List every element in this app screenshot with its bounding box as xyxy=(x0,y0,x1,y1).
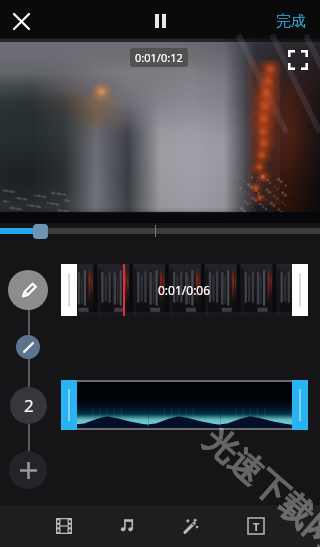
button[interactable]: Clip 2 xyxy=(10,387,47,424)
button[interactable]: Effects xyxy=(170,505,212,547)
button[interactable]: 完成 xyxy=(262,0,320,42)
button[interactable]: Close xyxy=(0,0,42,42)
staticText: 0:01/0:12 xyxy=(135,50,183,65)
staticText: 光速下载网 xyxy=(196,419,320,547)
staticText: T xyxy=(253,519,260,534)
button[interactable]: Video xyxy=(43,505,85,547)
staticText: 0:01/0:06 xyxy=(158,282,211,298)
button[interactable]: Edit clip xyxy=(8,270,48,310)
button[interactable]: Pause xyxy=(139,0,181,42)
button[interactable]: Fullscreen xyxy=(288,50,308,70)
button[interactable]: Seek handle xyxy=(33,224,48,239)
button[interactable]: Transition xyxy=(16,335,40,359)
staticText: 完成 xyxy=(276,12,306,31)
button[interactable]: Music xyxy=(106,505,148,547)
staticText: 2 xyxy=(24,394,34,417)
button[interactable]: Add clip xyxy=(9,451,47,489)
button[interactable]: Text xyxy=(235,505,277,547)
